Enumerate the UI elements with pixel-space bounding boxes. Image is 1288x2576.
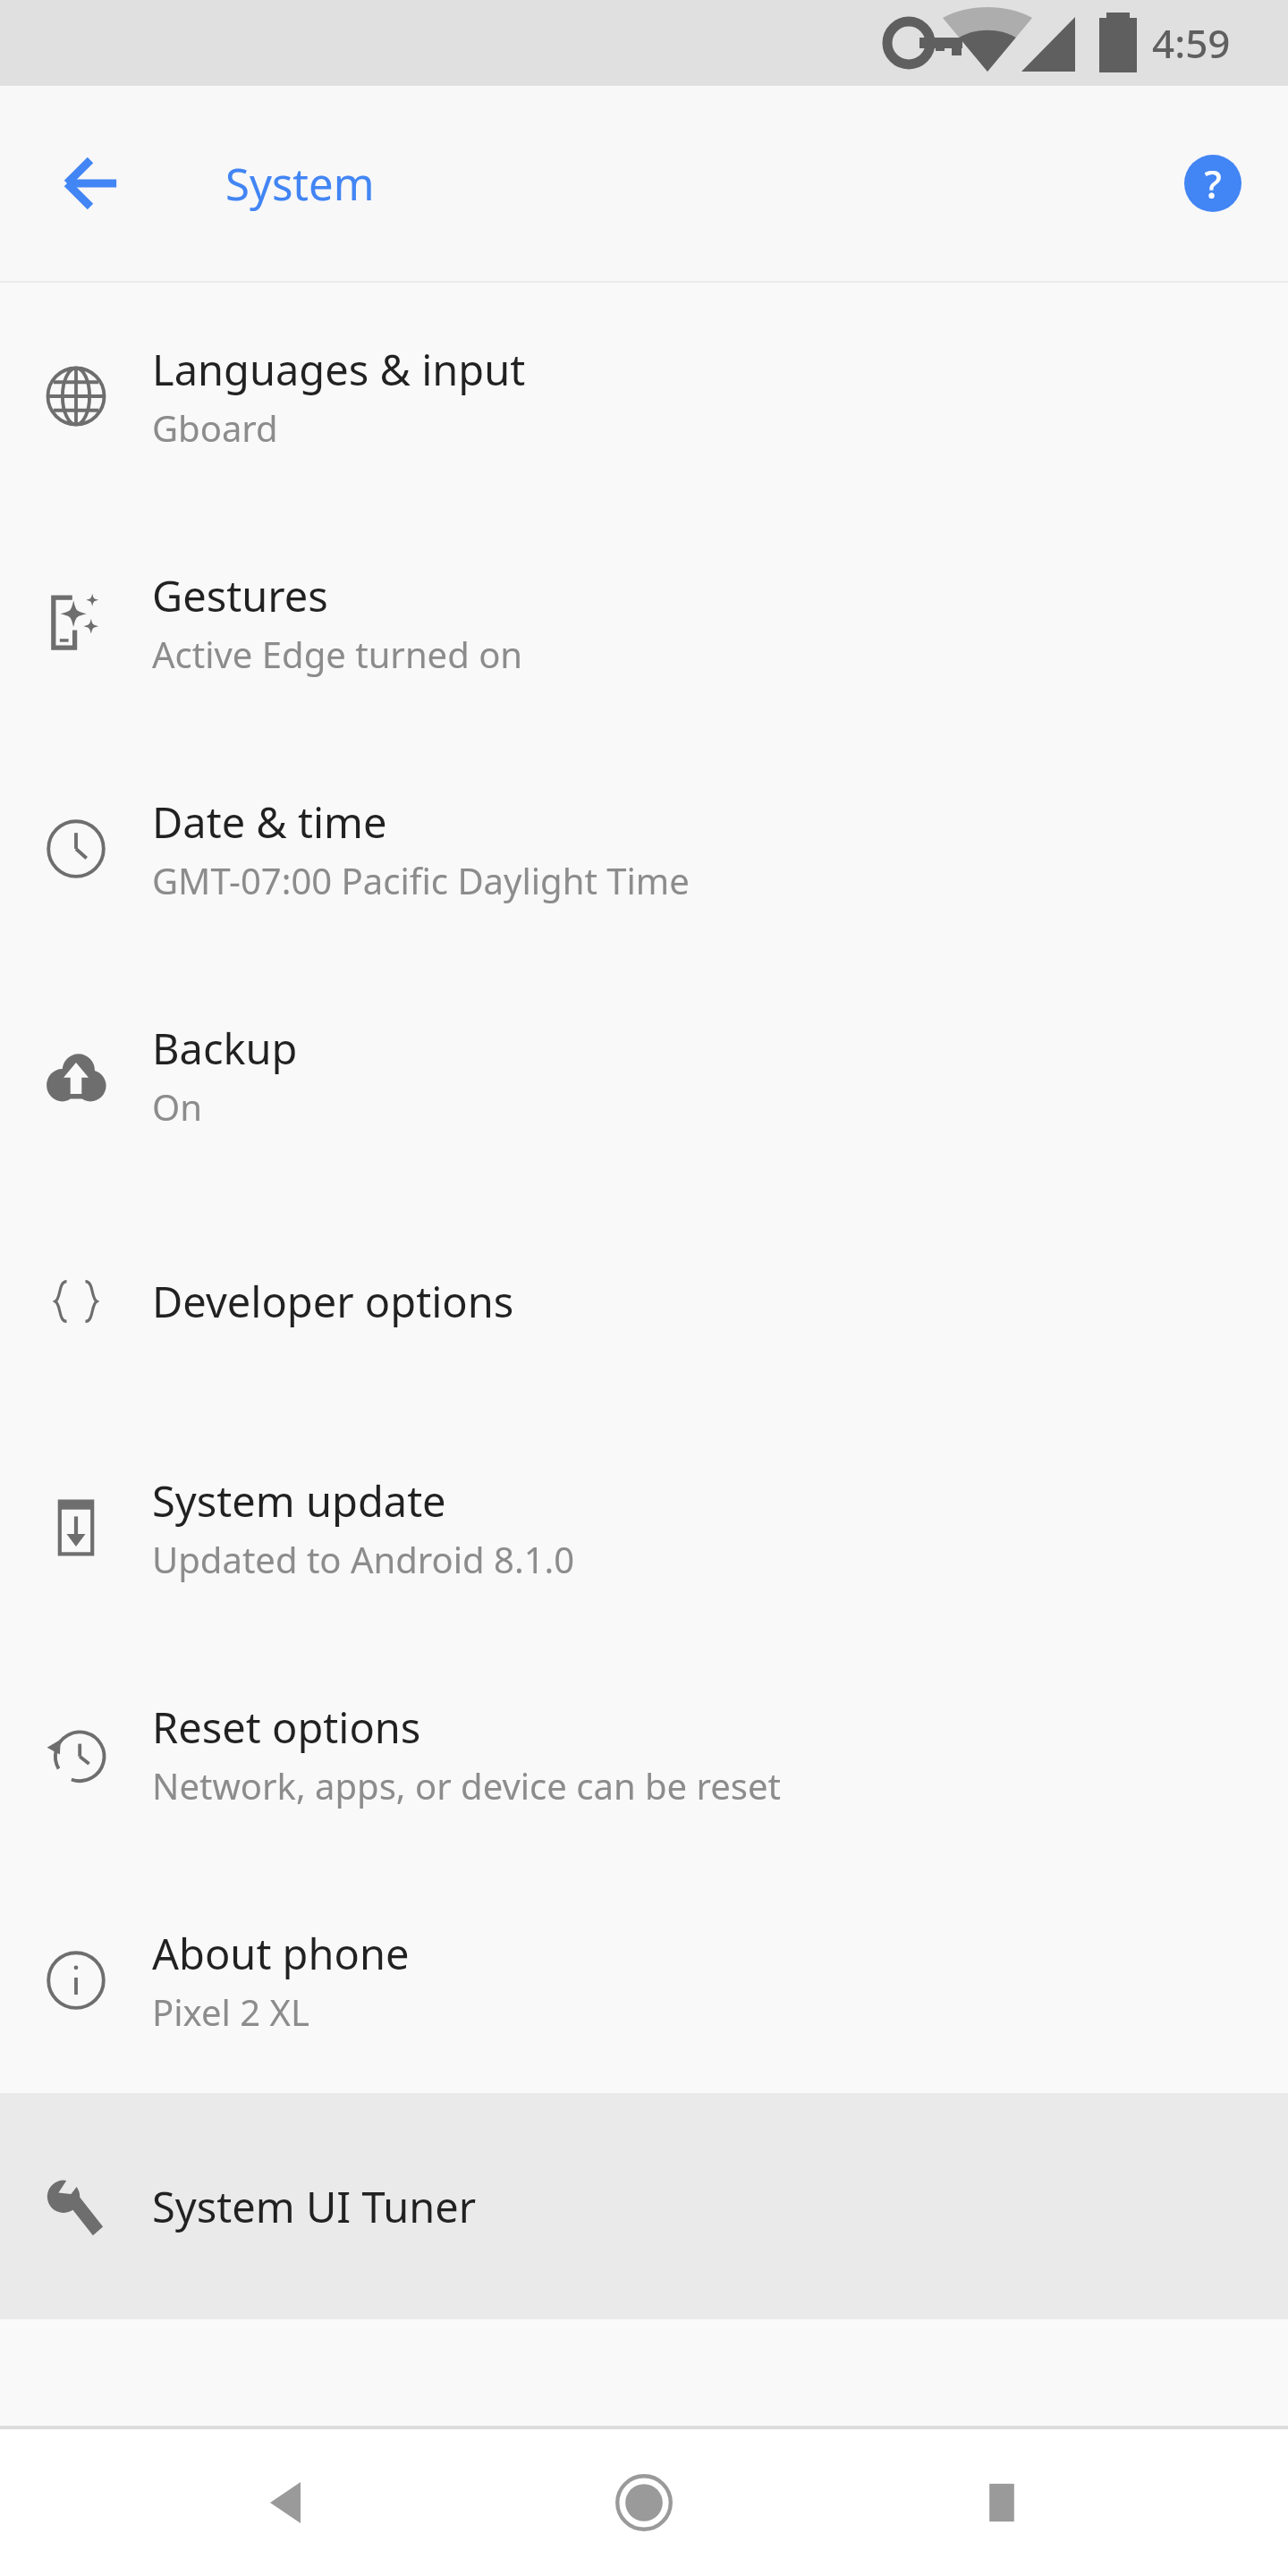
staticText: Updated to Android 8.1.0	[152, 1535, 575, 1583]
staticText: Reset options	[152, 1699, 421, 1756]
staticText: Network, apps, or device can be reset	[152, 1761, 781, 1809]
staticText: Active Edge turned on	[152, 630, 523, 678]
staticText: ?	[1204, 157, 1222, 210]
button[interactable]: Recent apps	[939, 2440, 1064, 2565]
button[interactable]: Home	[581, 2440, 707, 2565]
button[interactable]: Navigate up	[40, 133, 140, 233]
staticText: Date & time	[152, 793, 387, 851]
button[interactable]: About phone	[0, 1867, 1288, 2093]
staticText: Backup	[152, 1020, 298, 1077]
staticText: Gestures	[152, 567, 328, 624]
staticText: Developer options	[152, 1273, 514, 1330]
button[interactable]: Help	[1163, 133, 1263, 233]
staticText: GMT-07:00 Pacific Daylight Time	[152, 856, 690, 904]
button[interactable]: Developer options	[0, 1188, 1288, 1414]
button[interactable]: System update	[0, 1414, 1288, 1640]
button[interactable]: Back	[224, 2440, 349, 2565]
button[interactable]: Languages & input	[0, 283, 1288, 509]
staticText: System update	[152, 1472, 446, 1529]
button[interactable]: Backup	[0, 962, 1288, 1188]
button[interactable]: System UI Tuner	[0, 2093, 1288, 2319]
button[interactable]: Date & time	[0, 735, 1288, 962]
staticText: 4:59	[1152, 16, 1231, 70]
staticText: About phone	[152, 1925, 410, 1982]
staticText: Gboard	[152, 403, 278, 452]
staticText: Languages & input	[152, 341, 526, 398]
staticText: System	[225, 154, 375, 214]
staticText: On	[152, 1082, 202, 1131]
staticText: Pixel 2 XL	[152, 1987, 309, 2036]
button[interactable]: Reset options	[0, 1640, 1288, 1867]
staticText: System UI Tuner	[152, 2178, 477, 2235]
button[interactable]: Gestures	[0, 509, 1288, 735]
